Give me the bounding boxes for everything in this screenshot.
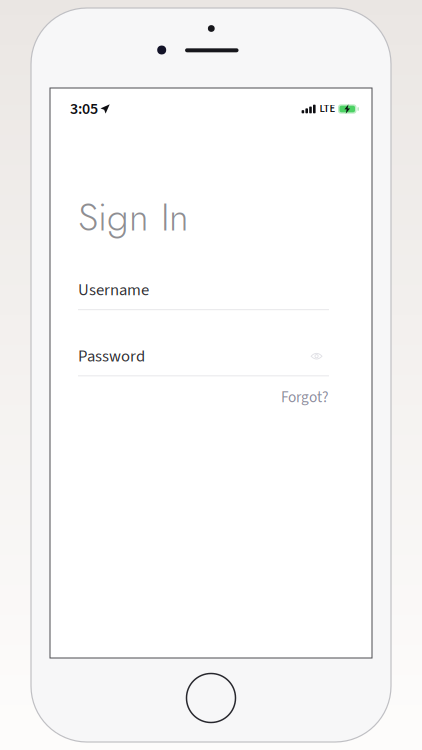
button[interactable]: Forgot?	[281, 386, 329, 408]
button[interactable]: Home	[186, 673, 235, 722]
staticText: Forgot?	[281, 386, 329, 408]
staticText: Sign In	[78, 189, 189, 245]
staticText: Password	[78, 344, 145, 368]
button[interactable]: Show password	[311, 352, 322, 360]
staticText: Username	[78, 278, 149, 302]
staticText: 3:05	[70, 98, 98, 120]
staticText: LTE	[319, 101, 335, 117]
